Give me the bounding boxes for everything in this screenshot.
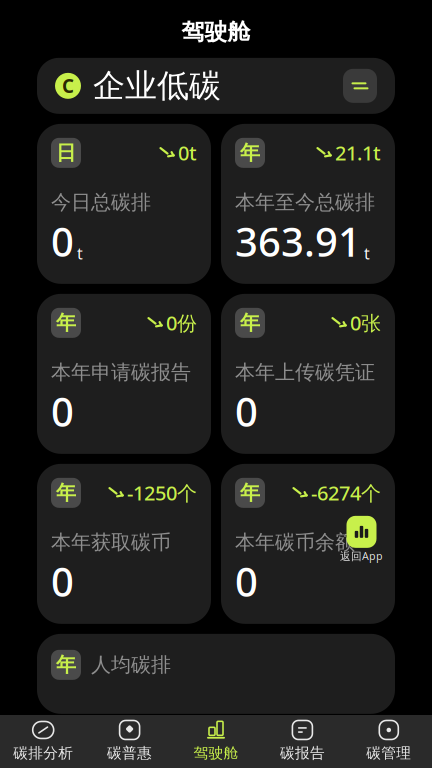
staticText: 人均碳排 (91, 653, 171, 677)
button[interactable]: 年 (221, 124, 395, 284)
button[interactable]: 年 (37, 634, 395, 714)
staticText: 碳报告 (280, 744, 325, 762)
staticText: 0 (51, 215, 74, 268)
staticText: t (364, 243, 370, 264)
staticText: 年 (56, 311, 76, 335)
staticText: 年 (240, 311, 260, 335)
staticText: 驾驶舱 (193, 744, 238, 762)
button[interactable]: 日 (37, 124, 211, 284)
button[interactable]: 碳普惠 (86, 713, 173, 768)
button[interactable]: 年 (37, 294, 211, 454)
staticText: 0 (235, 385, 258, 438)
staticText: 年 (56, 481, 76, 505)
button[interactable]: 年 (221, 294, 395, 454)
staticText: 0 (235, 555, 258, 608)
staticText: 本年至今总碳排 (235, 190, 375, 215)
staticText: 碳普惠 (107, 744, 152, 762)
staticText: 年 (56, 653, 76, 677)
staticText: t (77, 243, 83, 264)
staticText: 年 (240, 141, 260, 165)
staticText: 年 (240, 481, 260, 505)
staticText: C (62, 73, 74, 98)
staticText: 碳排分析 (13, 744, 73, 762)
staticText: 0 (51, 385, 74, 438)
staticText: 本年申请碳报告 (51, 360, 191, 385)
staticText: -6274个 (311, 480, 381, 506)
staticText: 返回App (340, 549, 383, 563)
staticText: 363.91 (235, 215, 361, 268)
staticText: 0 (51, 555, 74, 608)
staticText: 21.1t (335, 140, 381, 166)
staticText: 本年上传碳凭证 (235, 360, 375, 385)
staticText: 碳管理 (366, 744, 411, 762)
button[interactable]: 碳管理 (346, 713, 432, 768)
button[interactable]: 年 (221, 464, 395, 624)
staticText: 0t (178, 140, 197, 166)
button[interactable]: 碳报告 (259, 713, 346, 768)
button[interactable]: 返回App (340, 516, 383, 563)
button[interactable]: C (37, 58, 395, 114)
staticText: 驾驶舱 (181, 18, 250, 46)
button[interactable]: 驾驶舱 (173, 713, 259, 768)
staticText: 日 (56, 141, 76, 165)
staticText: 0份 (166, 310, 197, 336)
button[interactable]: 碳排分析 (0, 713, 86, 768)
staticText: 今日总碳排 (51, 190, 151, 215)
staticText: 本年碳币余额 (235, 530, 355, 555)
staticText: 企业低碳 (93, 66, 221, 105)
button[interactable]: 年 (37, 464, 211, 624)
staticText: 0张 (350, 310, 381, 336)
staticText: -1250个 (127, 480, 197, 506)
staticText: 本年获取碳币 (51, 530, 171, 555)
